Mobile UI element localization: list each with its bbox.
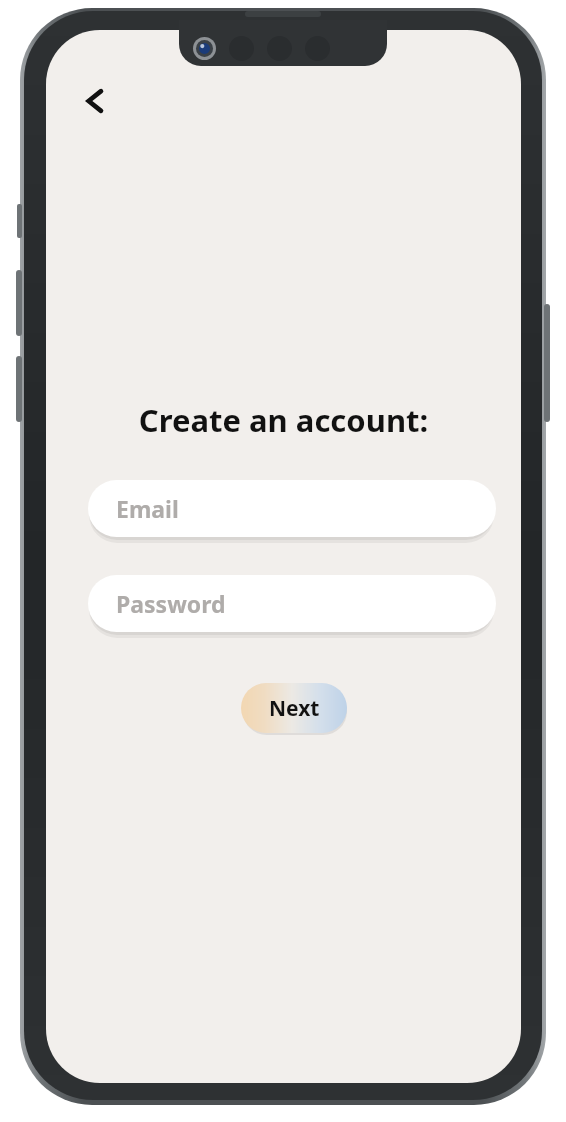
staticText: Create an account: xyxy=(46,399,521,441)
staticText: Email xyxy=(116,493,179,524)
button[interactable]: Back xyxy=(71,77,119,125)
button[interactable]: Next xyxy=(241,683,347,733)
staticText: Password xyxy=(116,588,226,619)
button[interactable]: Password xyxy=(88,575,496,632)
button[interactable]: Email xyxy=(88,480,496,537)
staticText: Next xyxy=(269,694,320,723)
